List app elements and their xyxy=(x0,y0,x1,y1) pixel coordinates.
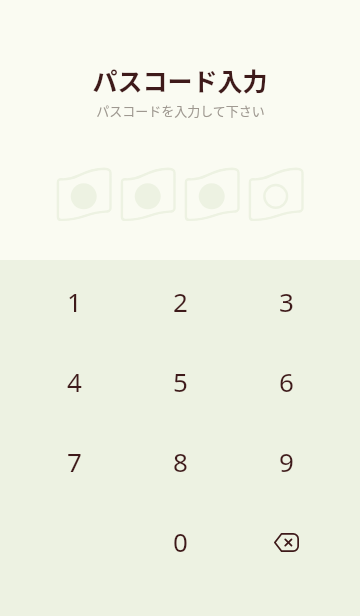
button[interactable]: 2 xyxy=(127,261,233,341)
staticText: 4 xyxy=(67,364,82,399)
staticText: 5 xyxy=(173,364,188,399)
staticText: 1 xyxy=(67,284,82,319)
button[interactable]: 7 xyxy=(21,421,127,501)
staticText: 2 xyxy=(173,284,188,319)
button[interactable]: 1 xyxy=(21,261,127,341)
button[interactable]: 0 xyxy=(127,501,233,581)
button[interactable]: 8 xyxy=(127,421,233,501)
staticText: 7 xyxy=(67,444,82,479)
button[interactable]: 5 xyxy=(127,341,233,421)
staticText: 6 xyxy=(279,364,294,399)
button[interactable]: Backspace xyxy=(233,501,339,581)
staticText: 0 xyxy=(173,524,188,559)
staticText: 9 xyxy=(279,444,294,479)
staticText: 3 xyxy=(279,284,294,319)
button[interactable]: 3 xyxy=(233,261,339,341)
button[interactable]: 6 xyxy=(233,341,339,421)
staticText: 8 xyxy=(173,444,188,479)
staticText: パスコード入力 xyxy=(92,62,268,98)
button[interactable]: 9 xyxy=(233,421,339,501)
staticText: パスコードを入力して下さい xyxy=(96,101,265,120)
other: Backspace xyxy=(274,533,299,552)
button[interactable]: 4 xyxy=(21,341,127,421)
